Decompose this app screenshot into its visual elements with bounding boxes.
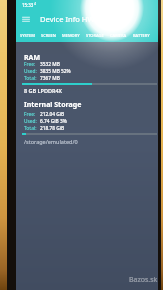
staticText: STORAGE: [86, 33, 104, 38]
staticText: Total:: [24, 75, 37, 82]
staticText: 218.78 GiB: [40, 125, 65, 132]
staticText: 8 GB LPDDR4X: [24, 87, 62, 94]
staticText: 3835 MB 52%: [40, 68, 71, 75]
button[interactable]: MEMORY: [62, 28, 80, 42]
staticText: Free:: [24, 111, 36, 118]
staticText: MEMORY: [62, 33, 80, 38]
staticText: 7367 MB: [40, 75, 60, 82]
staticText: SYSTEM: [20, 33, 35, 38]
button[interactable]: Open navigation menu: [21, 14, 31, 24]
staticText: 6.74 GiB 3%: [40, 118, 67, 125]
button[interactable]: SYSTEM: [20, 28, 35, 42]
staticText: RAM: [24, 53, 41, 63]
staticText: Device Info HW: [40, 14, 95, 24]
staticText: 15:33: [22, 2, 34, 8]
button[interactable]: BATTERY: [133, 28, 150, 42]
staticText: SCREEN: [41, 33, 56, 38]
staticText: Total:: [24, 125, 37, 132]
button[interactable]: SCREEN: [41, 28, 56, 42]
staticText: 212.04 GiB: [40, 111, 65, 118]
button[interactable]: STORAGE: [86, 28, 104, 42]
staticText: Used:: [24, 68, 37, 75]
staticText: CAMERA: [110, 33, 127, 38]
staticText: Free:: [24, 61, 36, 68]
staticText: Used:: [24, 118, 37, 125]
staticText: Internal Storage: [24, 100, 82, 110]
staticText: Bazos.sk: [129, 275, 158, 285]
staticText: 4: [34, 1, 37, 6]
staticText: 3532 MB: [40, 61, 60, 68]
staticText: BATTERY: [133, 33, 150, 38]
staticText: /storage/emulated/0: [24, 138, 78, 145]
button[interactable]: CAMERA: [110, 28, 127, 42]
